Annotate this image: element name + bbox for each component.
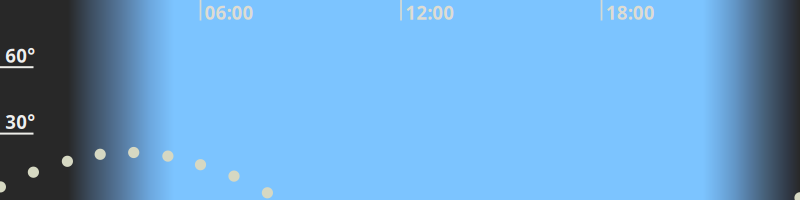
staticText: 18:00 [606,0,655,25]
button[interactable]: Hourly forecast chart [0,0,800,200]
staticText: 06:00 [205,0,254,25]
staticText: 30° [5,109,35,134]
staticText: 60° [5,43,35,68]
staticText: 12:00 [405,0,454,25]
